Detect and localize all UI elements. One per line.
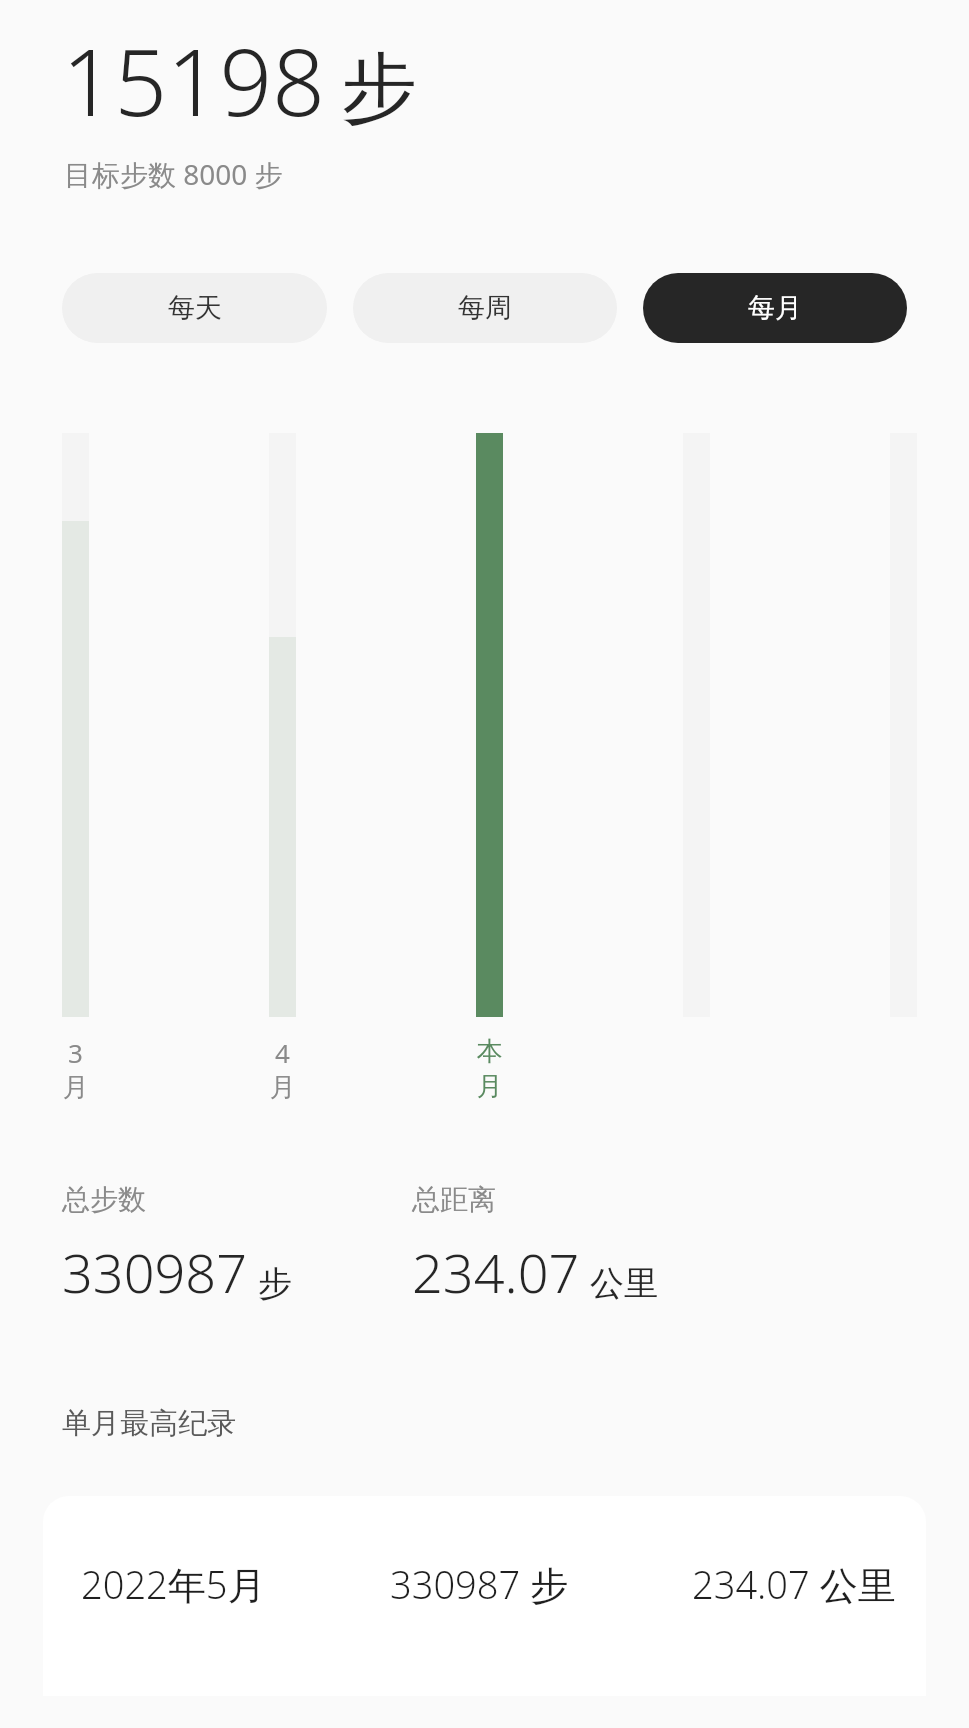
staticText: 4月 (269, 1035, 296, 1104)
staticText: 目标步数 8000 步 (64, 155, 283, 193)
staticText: 330987 (62, 1235, 248, 1309)
button[interactable]: 每月 (643, 273, 907, 343)
button[interactable]: 每天 (62, 273, 327, 343)
staticText: 3月 (62, 1035, 89, 1104)
button[interactable]: 每周 (353, 273, 617, 343)
staticText: 步 (341, 41, 417, 137)
staticText: 234.07 公里 (692, 1558, 896, 1610)
staticText: 每周 (458, 291, 512, 325)
staticText: 330987 步 (390, 1558, 569, 1610)
staticText: 单月最高纪录 (62, 1405, 236, 1442)
staticText: 步 (258, 1262, 292, 1305)
staticText: 2022年5月 (81, 1558, 266, 1610)
staticText: 每天 (168, 291, 222, 325)
staticText: 本月 (476, 1035, 503, 1103)
staticText: 总距离 (412, 1182, 496, 1217)
staticText: 总步数 (62, 1182, 146, 1217)
staticText: 每月 (748, 291, 802, 325)
staticText: 公里 (590, 1262, 658, 1305)
staticText: 234.07 (412, 1235, 580, 1309)
staticText: 15198 (62, 18, 325, 143)
button[interactable]: 2022年5月 (43, 1496, 926, 1696)
